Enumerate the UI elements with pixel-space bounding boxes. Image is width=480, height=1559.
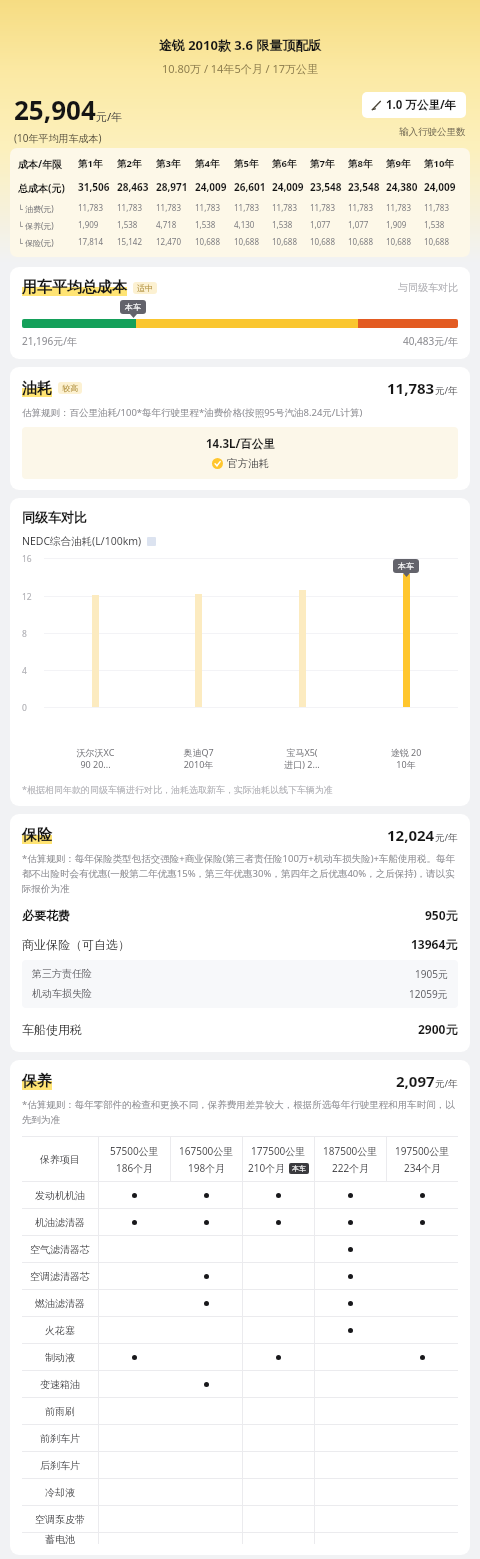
- staticText: 12,470: [156, 236, 182, 247]
- staticText: 10,688: [386, 236, 412, 247]
- staticText: 与同级车对比: [398, 281, 458, 294]
- staticText: 1,909: [386, 219, 407, 230]
- staticText: 4,718: [156, 219, 177, 230]
- staticText: 后刹车片: [40, 1459, 80, 1472]
- staticText: 11,783: [387, 378, 435, 398]
- staticText: 第1年: [78, 157, 103, 170]
- staticText: 第9年: [386, 157, 411, 170]
- staticText: 本车: [292, 1164, 306, 1173]
- staticText: 空气滤清器芯: [30, 1243, 90, 1256]
- staticText: └ 油费(元): [18, 203, 54, 214]
- staticText: 28,463: [117, 180, 149, 194]
- staticText: 估算规则：百公里油耗/100*每年行驶里程*油费价格(按照95号汽油8.24元/…: [22, 406, 363, 419]
- staticText: 2,097: [396, 1071, 435, 1091]
- staticText: 222个月: [332, 1161, 370, 1175]
- staticText: 第6年: [272, 157, 297, 170]
- staticText: 10,688: [272, 236, 298, 247]
- staticText: *估算规则：每年零部件的检查和更换不同，保养费用差异较大，根据所选每年行驶里程和…: [22, 1098, 458, 1126]
- staticText: 12,024: [387, 825, 435, 845]
- staticText: 10,688: [424, 236, 450, 247]
- staticText: 1,538: [117, 219, 138, 230]
- staticText: 26,601: [234, 180, 266, 194]
- staticText: 第4年: [195, 157, 220, 170]
- staticText: 15,142: [117, 236, 143, 247]
- staticText: 必要花费: [22, 908, 70, 923]
- staticText: 24,009: [272, 180, 304, 194]
- staticText: 31,506: [78, 180, 110, 194]
- staticText: └ 保养(元): [18, 220, 54, 231]
- button[interactable]: Edit annual mileage: [362, 92, 466, 118]
- staticText: 机动车损失险: [32, 987, 92, 1000]
- button[interactable]: 车船使用税: [22, 1021, 458, 1037]
- staticText: 输入行驶公里数: [399, 126, 466, 138]
- staticText: 11,783: [424, 202, 450, 213]
- staticText: 8: [22, 628, 27, 640]
- staticText: 23,548: [348, 180, 380, 194]
- staticText: 4,130: [234, 219, 255, 230]
- staticText: *根据相同年款的同级车辆进行对比，油耗选取新车，实际油耗以线下车辆为准: [22, 783, 333, 795]
- staticText: 前雨刷: [45, 1405, 75, 1418]
- staticText: 12: [22, 591, 32, 603]
- staticText: 14.3L/百公里: [206, 436, 275, 452]
- staticText: 宝马X5( 进口) 2...: [250, 746, 354, 771]
- staticText: 第7年: [310, 157, 335, 170]
- staticText: 1,909: [78, 219, 99, 230]
- staticText: 11,783: [348, 202, 374, 213]
- staticText: 燃油滤清器: [35, 1297, 85, 1310]
- staticText: 198个月: [188, 1161, 226, 1175]
- staticText: 成本/年限: [18, 157, 63, 171]
- staticText: 186个月: [116, 1161, 154, 1175]
- staticText: 11,783: [195, 202, 221, 213]
- staticText: 沃尔沃XC 90 20...: [44, 746, 147, 771]
- staticText: 11,783: [310, 202, 336, 213]
- staticText: 10,688: [348, 236, 374, 247]
- button[interactable]: 必要花费: [22, 907, 458, 923]
- staticText: 本车: [125, 302, 141, 312]
- staticText: 10.80万 / 14年5个月 / 17万公里: [0, 61, 480, 76]
- staticText: 第3年: [156, 157, 181, 170]
- staticText: 24,380: [386, 180, 418, 194]
- staticText: 11,783: [117, 202, 143, 213]
- staticText: 同级车对比: [22, 509, 87, 525]
- staticText: 途锐 20 10年: [354, 746, 458, 771]
- staticText: 11,783: [156, 202, 182, 213]
- staticText: 空调泵皮带: [35, 1513, 85, 1526]
- staticText: 火花塞: [45, 1324, 75, 1337]
- staticText: 10,688: [234, 236, 260, 247]
- staticText: 167500公里: [179, 1144, 234, 1158]
- staticText: 车船使用税: [22, 1022, 82, 1037]
- staticText: 0: [22, 702, 27, 714]
- staticText: 24,009: [424, 180, 456, 194]
- staticText: 10,688: [310, 236, 336, 247]
- staticText: 商业保险（可自选）: [22, 937, 130, 952]
- staticText: 17,814: [78, 236, 104, 247]
- staticText: 10,688: [195, 236, 221, 247]
- staticText: 11,783: [272, 202, 298, 213]
- staticText: 蓄电池: [45, 1533, 75, 1544]
- staticText: 1,538: [424, 219, 445, 230]
- staticText: 1,077: [310, 219, 331, 230]
- staticText: 元/年: [96, 109, 123, 124]
- staticText: 用车平均总成本: [22, 278, 127, 297]
- staticText: 第10年: [424, 157, 454, 170]
- staticText: 第2年: [117, 157, 142, 170]
- staticText: 油耗: [22, 379, 52, 398]
- staticText: 24,009: [195, 180, 227, 194]
- staticText: 总成本(元): [18, 181, 65, 195]
- staticText: 210个月: [248, 1161, 286, 1175]
- staticText: 元/年: [435, 831, 458, 844]
- staticText: 第三方责任险: [32, 967, 92, 980]
- staticText: 177500公里: [251, 1144, 306, 1158]
- staticText: 234个月: [404, 1161, 442, 1175]
- staticText: 4: [22, 665, 27, 677]
- staticText: 1905元: [415, 967, 448, 981]
- staticText: 12059元: [409, 987, 448, 1001]
- staticText: 元/年: [435, 384, 458, 397]
- staticText: └ 保险(元): [18, 237, 54, 248]
- staticText: 11,783: [78, 202, 104, 213]
- staticText: 本车: [398, 561, 414, 571]
- button[interactable]: 商业保险（可自选）: [22, 936, 458, 952]
- staticText: 前刹车片: [40, 1432, 80, 1445]
- staticText: *估算规则：每年保险类型包括交强险+商业保险(第三者责任险100万+机动车损失险…: [22, 852, 458, 895]
